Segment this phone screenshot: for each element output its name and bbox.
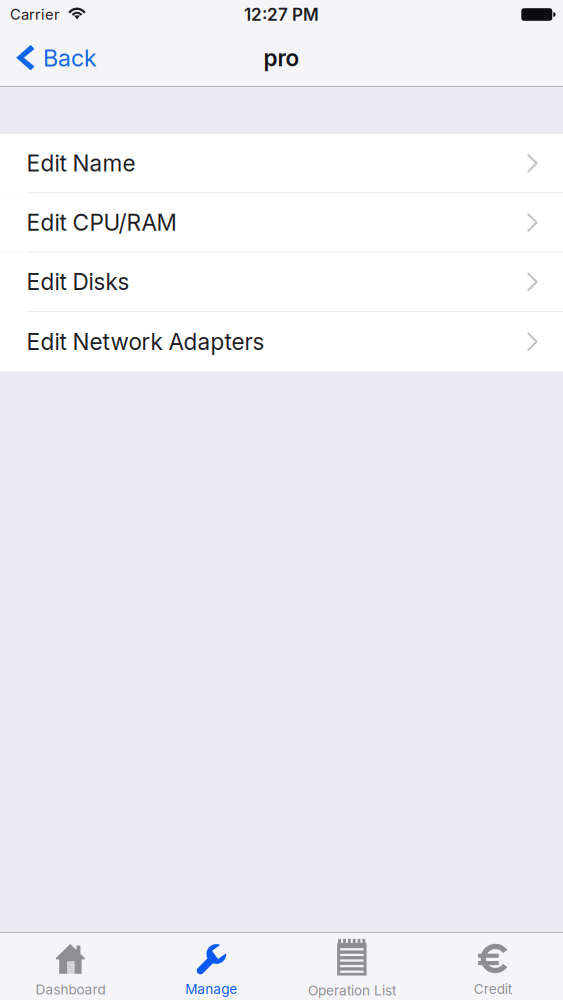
staticText: Edit Name: [26, 149, 135, 177]
staticText: Back: [43, 44, 97, 72]
button[interactable]: Edit Disks: [0, 253, 563, 312]
staticText: Edit Network Adapters: [26, 328, 264, 355]
staticText: 12:27 PM: [244, 4, 319, 25]
staticText: Manage: [185, 981, 237, 997]
staticText: Operation List: [308, 982, 396, 999]
staticText: Carrier: [10, 6, 60, 23]
button[interactable]: Credit: [422, 932, 563, 1000]
staticText: Credit: [474, 981, 512, 997]
staticText: pro: [263, 44, 299, 72]
button[interactable]: Back: [0, 29, 111, 86]
staticText: Edit CPU/RAM: [26, 209, 176, 236]
button[interactable]: Edit CPU/RAM: [0, 193, 563, 253]
staticText: Edit Disks: [26, 268, 129, 295]
button[interactable]: Manage: [141, 932, 282, 1000]
button[interactable]: Dashboard: [0, 932, 141, 1000]
button[interactable]: Edit Network Adapters: [0, 312, 563, 371]
button[interactable]: Operation List: [281, 932, 422, 1000]
staticText: Dashboard: [35, 981, 105, 998]
button[interactable]: Edit Name: [0, 134, 563, 193]
